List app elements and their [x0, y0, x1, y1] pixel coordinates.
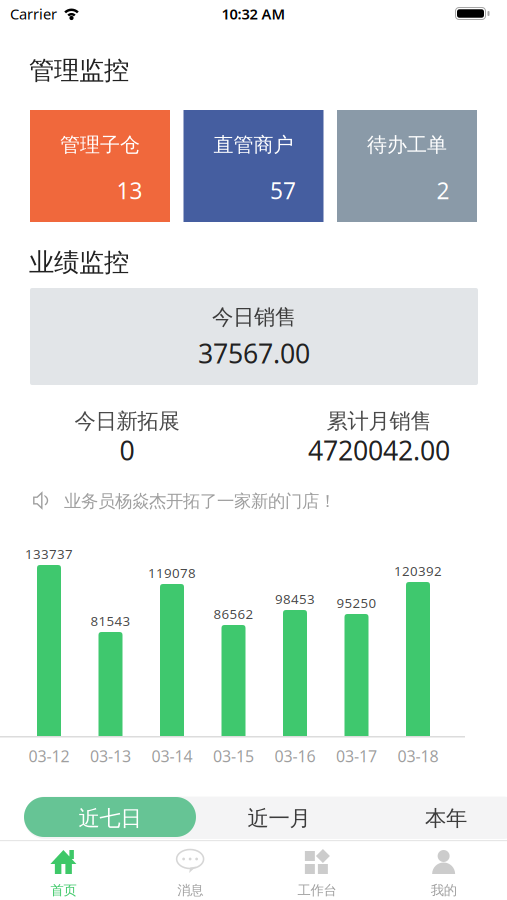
staticText: 工作台 [297, 882, 336, 898]
staticText: 业绩监控 [29, 247, 129, 278]
button[interactable]: 管理子仓 [30, 110, 170, 222]
staticText: 待办工单 [367, 132, 447, 157]
staticText: 近七日 [78, 805, 141, 832]
staticText: 95250 [336, 594, 376, 612]
staticText: 业务员杨焱杰开拓了一家新的门店！ [64, 490, 336, 512]
button[interactable]: 我的 [380, 841, 507, 900]
button[interactable]: 近一月 [193, 797, 365, 837]
button[interactable]: 待办工单 [337, 110, 477, 222]
staticText: 10:32 AM [221, 4, 285, 23]
staticText: 03-15 [213, 745, 254, 767]
staticText: 37567.00 [198, 335, 310, 371]
staticText: 03-13 [90, 745, 131, 767]
staticText: 133737 [25, 545, 73, 563]
staticText: 直管商户 [213, 132, 293, 157]
staticText: 13 [116, 175, 142, 206]
staticText: 管理监控 [29, 55, 129, 86]
button[interactable]: 工作台 [253, 841, 380, 900]
staticText: 03-17 [336, 745, 377, 767]
staticText: 累计月销售 [326, 408, 431, 434]
staticText: 首页 [50, 882, 76, 898]
staticText: 57 [270, 175, 296, 206]
button[interactable]: 近七日 [24, 797, 196, 837]
staticText: 119078 [148, 564, 196, 582]
staticText: Carrier [10, 4, 57, 23]
staticText: 03-18 [397, 745, 438, 767]
staticText: 81543 [90, 612, 130, 630]
staticText: 03-12 [28, 745, 69, 767]
staticText: 今日新拓展 [74, 408, 179, 434]
staticText: 4720042.00 [308, 432, 450, 468]
staticText: 120392 [394, 562, 442, 580]
staticText: 98453 [275, 590, 315, 608]
staticText: 今日销售 [212, 304, 296, 330]
button[interactable]: 消息 [127, 841, 254, 900]
staticText: 本年 [425, 805, 467, 832]
staticText: 0 [119, 432, 134, 468]
staticText: 近一月 [247, 805, 310, 832]
staticText: 管理子仓 [60, 132, 140, 157]
button[interactable]: 首页 [0, 841, 127, 900]
staticText: 86562 [213, 605, 253, 623]
button[interactable]: 直管商户 [183, 110, 323, 222]
staticText: 消息 [177, 882, 203, 898]
staticText: 03-14 [151, 745, 192, 767]
button[interactable]: 本年 [360, 797, 507, 837]
staticText: 03-16 [274, 745, 315, 767]
staticText: 我的 [431, 882, 457, 898]
staticText: 2 [436, 175, 449, 206]
